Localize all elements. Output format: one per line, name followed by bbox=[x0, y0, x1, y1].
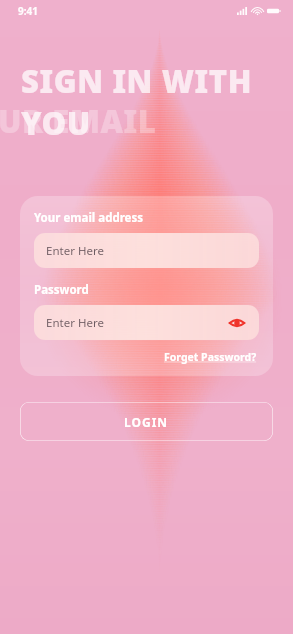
staticText: SIGN IN WITH YOU bbox=[21, 60, 293, 142]
staticText: 9:41 bbox=[18, 4, 38, 18]
button[interactable]: Forget Password? bbox=[162, 349, 259, 365]
button[interactable]: Enter Here bbox=[34, 233, 259, 268]
staticText: Enter Here bbox=[46, 243, 104, 259]
staticText: LOGIN bbox=[124, 414, 169, 430]
staticText: Your email address bbox=[34, 210, 143, 226]
staticText: Enter Here bbox=[46, 315, 104, 331]
button[interactable]: Show password bbox=[227, 313, 247, 333]
staticText: Forget Password? bbox=[164, 350, 257, 364]
button[interactable]: LOGIN bbox=[20, 402, 273, 441]
staticText: UR EMAIL bbox=[0, 100, 157, 142]
button[interactable]: Enter Here bbox=[34, 305, 259, 340]
staticText: Password bbox=[34, 282, 89, 298]
